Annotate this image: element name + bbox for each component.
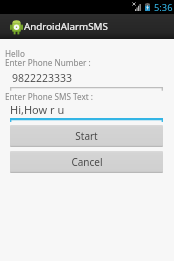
- button[interactable]: Hi,How r u: [10, 102, 163, 120]
- other: Battery charging: [145, 3, 150, 11]
- other: Roaming: [132, 2, 136, 6]
- staticText: 5:36: [154, 1, 173, 14]
- staticText: AndroidAlarmSMS: [24, 20, 108, 33]
- button[interactable]: 9822223333: [10, 71, 163, 89]
- staticText: Hi,How r u: [10, 102, 65, 117]
- staticText: Hello: [5, 48, 25, 59]
- staticText: 9822223333: [12, 71, 73, 85]
- staticText: Cancel: [71, 155, 103, 169]
- button[interactable]: Start: [10, 125, 163, 147]
- other: App icon: [10, 19, 23, 35]
- button[interactable]: Cancel: [10, 151, 163, 173]
- staticText: Enter Phone SMS Text :: [5, 91, 94, 102]
- other: Signal strength: [135, 4, 141, 11]
- button[interactable]: App icon: [0, 14, 174, 39]
- staticText: Enter Phone Number :: [5, 57, 91, 68]
- staticText: Start: [75, 129, 98, 143]
